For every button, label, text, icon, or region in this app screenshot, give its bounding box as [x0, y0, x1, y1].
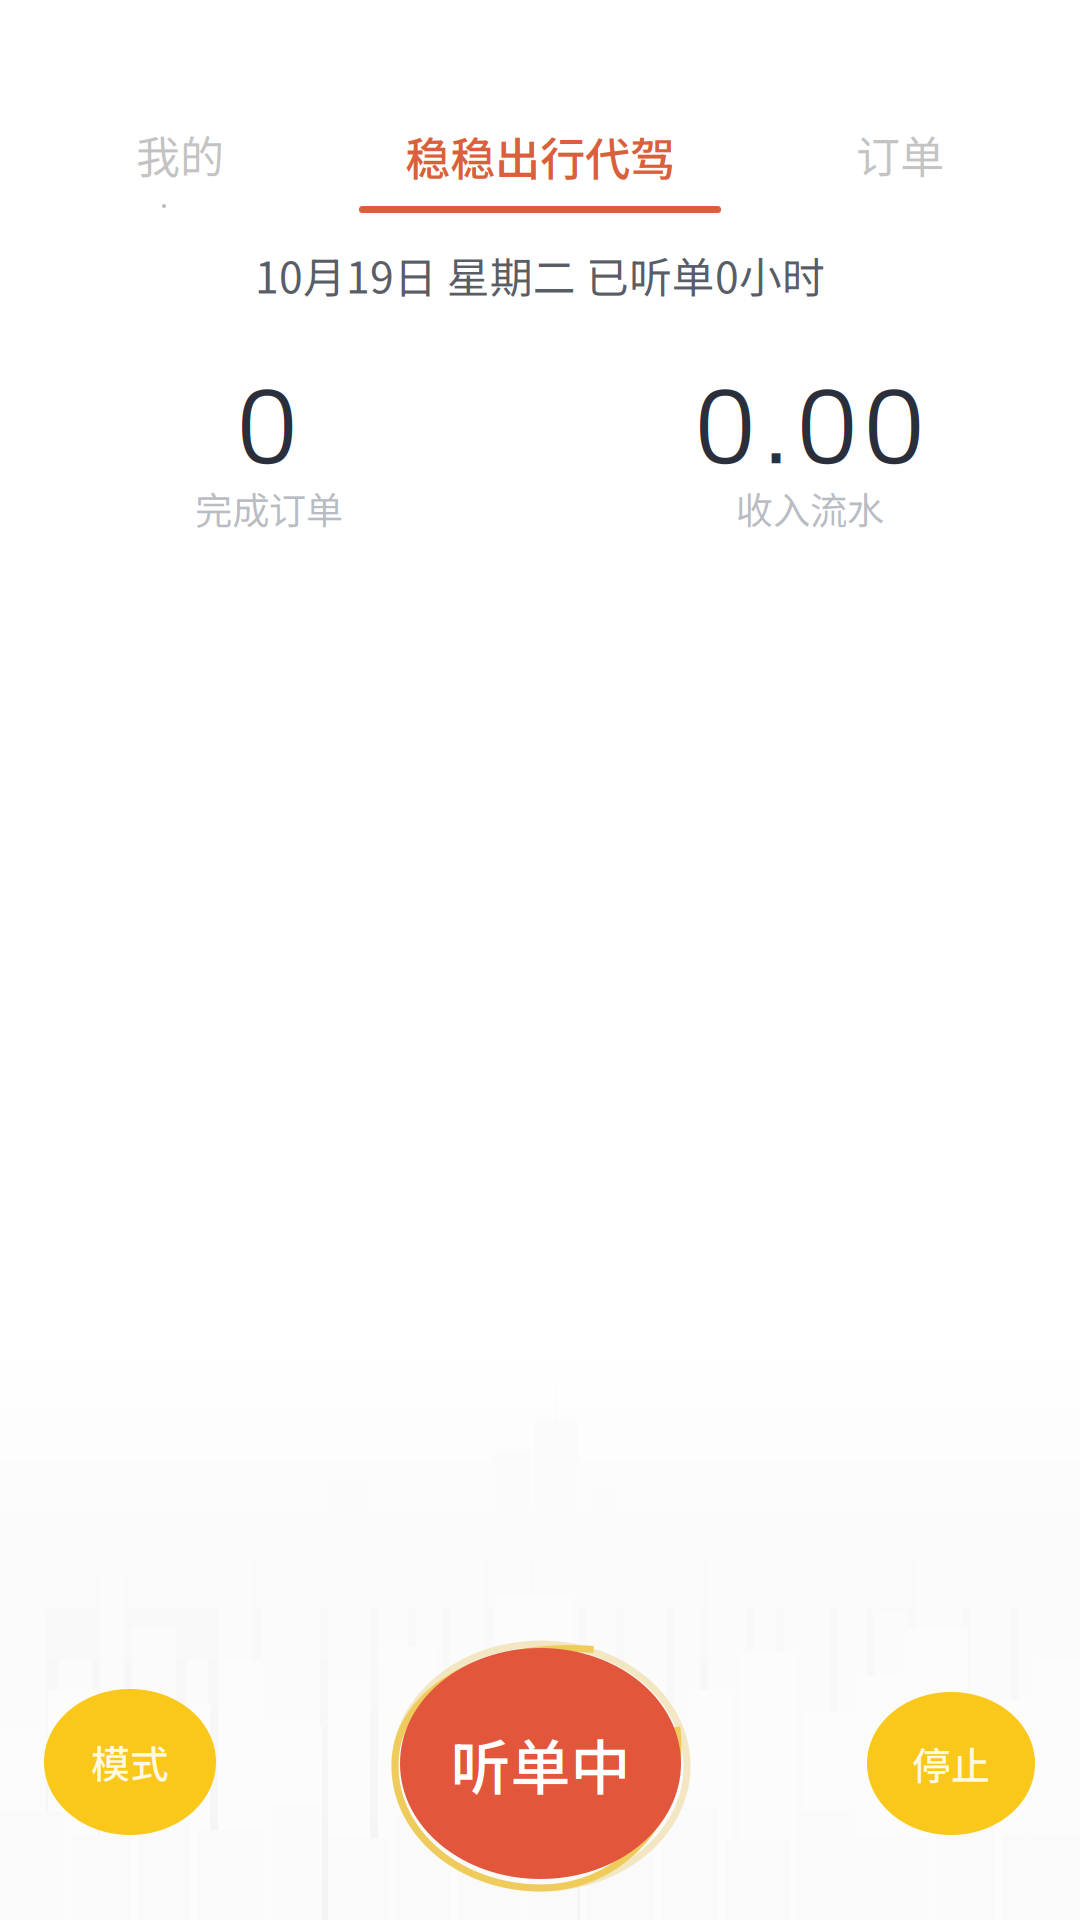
staticText: 稳稳出行代驾	[405, 123, 675, 189]
staticText: 0.00	[695, 371, 924, 485]
button[interactable]: 订单	[810, 106, 990, 202]
staticText: 完成订单	[195, 481, 343, 535]
staticText: 10月19日 星期二 已听单0小时	[255, 244, 825, 306]
staticText: 0	[237, 371, 297, 485]
button[interactable]: 听单中	[389, 1644, 687, 1888]
button[interactable]: 我的	[90, 106, 270, 202]
button[interactable]: 模式	[44, 1689, 216, 1835]
staticText: 收入流水	[736, 481, 884, 535]
staticText: 我的	[136, 122, 224, 186]
staticText: 模式	[91, 1734, 169, 1790]
staticText: 停止	[912, 1735, 990, 1791]
button[interactable]: 停止	[867, 1692, 1035, 1835]
button[interactable]: 稳稳出行代驾	[340, 106, 740, 216]
staticText: 听单中	[450, 1720, 630, 1807]
staticText: 订单	[856, 122, 944, 186]
